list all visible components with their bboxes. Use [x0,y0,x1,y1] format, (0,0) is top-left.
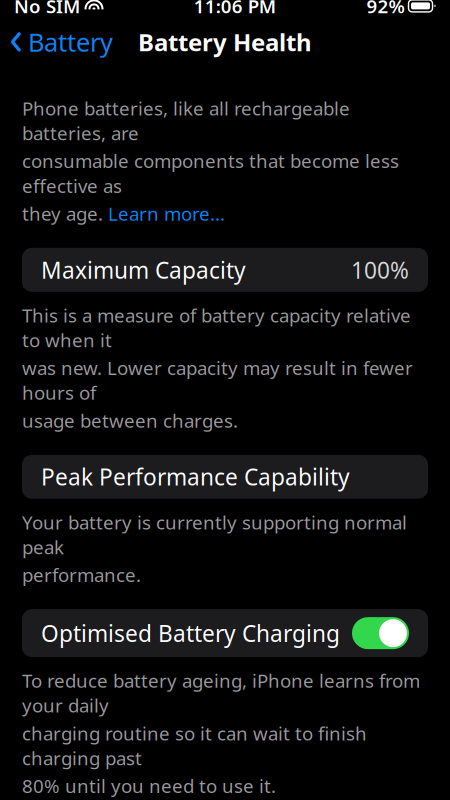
staticText: Peak Performance Capability [41,462,350,492]
staticText: Phone batteries, like all rechargeable b… [22,96,350,145]
button[interactable]: Learn more... [108,201,225,226]
staticText: 92% [366,0,404,18]
staticText: Your battery is currently supporting nor… [22,510,407,559]
staticText: To reduce battery ageing, iPhone learns … [22,668,420,718]
button[interactable]: Battery [0,19,123,65]
staticText: consumable components that become less e… [22,148,399,198]
staticText: 100% [351,255,409,285]
staticText: Optimised Battery Charging [41,618,340,648]
staticText: 80% until you need to use it. [22,773,276,798]
staticText: they age. [22,201,108,226]
button[interactable]: Maximum Capacity [22,248,428,292]
staticText: Learn more... [108,201,225,226]
staticText: usage between charges. [22,408,238,433]
staticText: Maximum Capacity [41,255,246,285]
button[interactable]: Peak Performance Capability [22,455,428,499]
staticText: 11:06 PM [194,0,276,18]
staticText: No SIM [14,0,80,18]
staticText: was new. Lower capacity may result in fe… [22,355,413,405]
staticText: This is a measure of battery capacity re… [22,303,411,352]
button[interactable]: Optimised Battery Charging [22,609,428,657]
staticText: Battery Health [138,26,312,58]
staticText: Battery [28,25,113,59]
staticText: performance. [22,562,141,587]
staticText: charging routine so it can wait to finis… [22,721,367,770]
